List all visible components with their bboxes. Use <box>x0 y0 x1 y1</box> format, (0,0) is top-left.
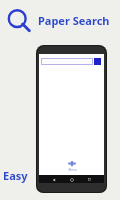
button[interactable]: Home <box>68 176 75 183</box>
staticText: Easy <box>3 168 28 183</box>
button[interactable]: Recent apps <box>86 176 93 183</box>
staticText: Menu <box>68 168 77 172</box>
button[interactable] <box>41 58 93 65</box>
staticText: Paper Search <box>38 13 110 28</box>
button[interactable]: Back <box>50 176 57 183</box>
button[interactable]: Search <box>6 8 34 36</box>
